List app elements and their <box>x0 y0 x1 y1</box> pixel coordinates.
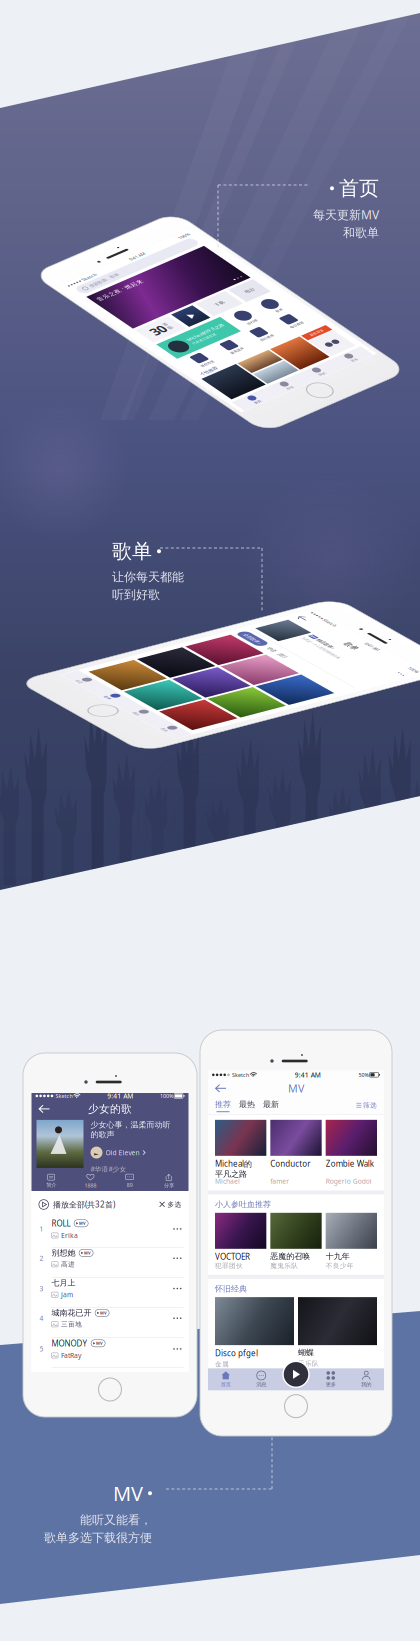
staticText: 89 <box>127 1181 133 1188</box>
staticText: 1888 <box>84 1182 96 1189</box>
staticText: 恶魔的召唤 <box>270 1251 310 1261</box>
staticText: Conductor <box>270 1158 310 1169</box>
staticText: 怀旧经典 <box>215 1284 247 1294</box>
staticText: 金属 <box>215 1360 229 1368</box>
staticText: 9:41 AM <box>107 1091 133 1100</box>
button[interactable]: VOCTOER <box>215 1213 266 1270</box>
button[interactable]: Back <box>34 1103 54 1115</box>
button[interactable]: Back <box>211 1082 231 1095</box>
staticText: famer <box>270 1177 289 1185</box>
button[interactable]: 消息 <box>243 1368 279 1390</box>
staticText: 小人参吐血推荐 <box>215 1199 271 1209</box>
button[interactable]: Disco pfgel <box>215 1297 294 1368</box>
button[interactable]: Old Eleven <box>90 1147 146 1159</box>
staticText: VOCTOER <box>215 1251 250 1262</box>
button[interactable]: 分享 <box>149 1174 188 1189</box>
staticText: 最热 <box>239 1099 255 1109</box>
staticText: Sketch <box>232 1071 249 1078</box>
staticText: 七月上 <box>51 1278 75 1288</box>
staticText: 天乐队 <box>298 1359 319 1368</box>
staticText: 2 <box>39 1254 43 1263</box>
button[interactable]: 播放全部(共32首) <box>38 1199 115 1210</box>
staticText: 50% <box>358 1071 368 1078</box>
staticText: 不良少年 <box>326 1262 354 1270</box>
staticText: 别想她 <box>51 1248 75 1258</box>
button[interactable]: 最热 <box>231 1099 255 1112</box>
staticText: MV <box>96 1341 103 1346</box>
button[interactable]: Micheal的 平凡之路 <box>215 1120 266 1185</box>
staticText: 1 <box>39 1224 43 1233</box>
button[interactable]: 3 <box>31 1278 188 1308</box>
staticText: MONODY <box>51 1338 87 1349</box>
staticText: 少女心事，温柔而动听的歌声 <box>90 1120 170 1140</box>
button[interactable]: 1888 <box>71 1173 110 1189</box>
button[interactable]: 89 <box>110 1174 149 1188</box>
button[interactable]: 恶魔的召唤 <box>270 1213 322 1270</box>
button[interactable]: 1 <box>31 1218 188 1248</box>
staticText: 魔鬼乐队 <box>270 1262 298 1270</box>
staticText: Sketch <box>366 628 383 635</box>
staticText: 多选 <box>167 1200 181 1209</box>
staticText: 十九年 <box>326 1251 350 1261</box>
staticText: 5 <box>39 1344 43 1353</box>
staticText: FatRay <box>61 1351 81 1360</box>
staticText: 最新 <box>263 1099 279 1109</box>
button[interactable]: Zombie Walk <box>326 1120 377 1185</box>
button[interactable]: 最新 <box>255 1099 279 1112</box>
staticText: 每天更新MV <box>313 207 379 222</box>
button[interactable]: 首页 <box>208 1368 243 1390</box>
button[interactable]: 蝴蝶 <box>298 1297 377 1367</box>
button[interactable]: 更多 <box>313 1368 348 1390</box>
button[interactable]: Conductor <box>270 1120 322 1185</box>
staticText: Micheal的 平凡之路 <box>215 1158 252 1179</box>
staticText: 能听又能看， <box>80 1513 152 1527</box>
button[interactable]: 简介 <box>31 1174 71 1188</box>
staticText: MV <box>79 1221 86 1226</box>
button[interactable]: 4 <box>31 1308 188 1338</box>
staticText: 分享 <box>164 1182 174 1189</box>
staticText: 少女的歌 <box>88 1102 132 1115</box>
staticText: 让你每天都能 <box>112 570 184 584</box>
staticText: Sketch <box>62 304 79 311</box>
staticText: 为喜欢一个人而写的歌曲合集 <box>387 664 420 669</box>
staticText: MV <box>100 1310 107 1316</box>
button[interactable]: 筛选 <box>356 1101 377 1112</box>
staticText: Erika <box>61 1231 78 1240</box>
staticText: MV <box>288 1081 304 1095</box>
staticText: 筛选 <box>363 1101 377 1109</box>
button[interactable]: 十九年 <box>326 1213 377 1270</box>
staticText: 推荐 <box>215 1099 231 1109</box>
staticText: Old Eleven <box>105 1148 139 1157</box>
staticText: 歌单多选下载很方便 <box>44 1530 152 1545</box>
staticText: 我的 <box>361 1381 371 1388</box>
button[interactable]: 多选 <box>160 1200 181 1209</box>
staticText: #华语#少女 <box>90 1165 126 1173</box>
button[interactable]: 我的 <box>348 1368 384 1390</box>
button[interactable]: 推荐 <box>215 1099 231 1112</box>
staticText: 我的 <box>135 541 143 546</box>
staticText: 歌单 <box>112 539 152 564</box>
staticText: 9:41 AM <box>120 304 139 311</box>
button[interactable]: 5 <box>31 1338 188 1368</box>
staticText: 搜索歌曲、歌单 <box>61 316 96 322</box>
button[interactable]: 2 <box>31 1248 188 1278</box>
staticText: ROLL <box>51 1218 70 1229</box>
button[interactable]: Play <box>283 1361 309 1387</box>
